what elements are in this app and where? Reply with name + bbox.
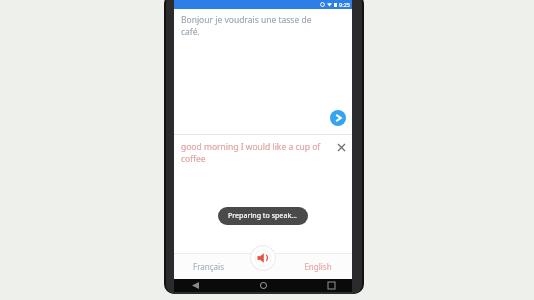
button[interactable]: Clear text <box>334 140 348 154</box>
staticText: Français <box>193 261 224 272</box>
button[interactable]: English <box>283 253 352 279</box>
staticText: Preparing to speak... <box>228 211 298 221</box>
button[interactable]: Recents <box>324 279 338 292</box>
button[interactable]: Français <box>174 253 243 279</box>
button[interactable]: Bonjour je voudrais une tasse de café. <box>174 9 352 134</box>
staticText: Bonjour je voudrais une tasse de café. <box>181 14 326 38</box>
button[interactable]: good morning I would like a cup of coffe… <box>181 141 328 165</box>
button[interactable]: Speak <box>248 245 278 271</box>
button[interactable]: Home <box>256 279 270 292</box>
button[interactable]: Play translation <box>330 110 346 126</box>
button[interactable]: Back <box>188 279 202 292</box>
staticText: 9:25 <box>339 1 350 8</box>
staticText: English <box>304 261 332 272</box>
